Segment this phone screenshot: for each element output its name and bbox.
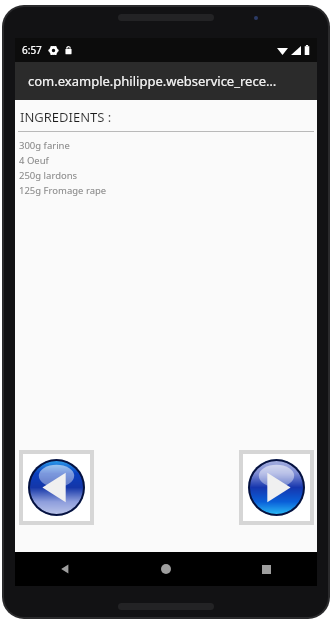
- staticText: INGREDIENTS :: [20, 108, 112, 126]
- button[interactable]: Back: [15, 552, 115, 586]
- button[interactable]: Recents: [216, 552, 317, 586]
- staticText: 125g Fromage rape: [19, 184, 107, 197]
- button[interactable]: com.example.philippe.webservice_rece…: [15, 62, 317, 100]
- button[interactable]: Previous recipe: [21, 452, 92, 523]
- button[interactable]: Next recipe: [241, 452, 312, 523]
- staticText: 4 Oeuf: [19, 154, 49, 167]
- staticText: com.example.philippe.webservice_rece…: [28, 72, 277, 90]
- staticText: 300g farine: [19, 139, 70, 152]
- staticText: 6:57: [22, 43, 42, 57]
- button[interactable]: Home: [115, 552, 216, 586]
- staticText: 250g lardons: [19, 169, 78, 182]
